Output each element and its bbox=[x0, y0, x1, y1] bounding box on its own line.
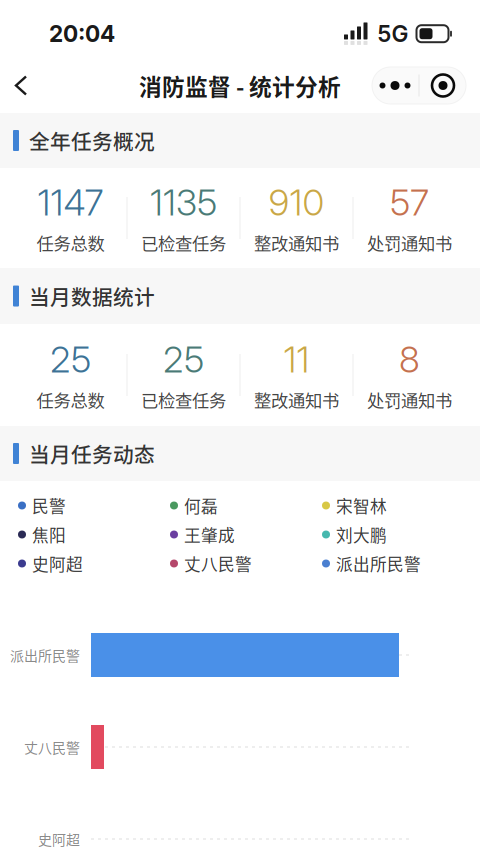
staticText: 宋智林 bbox=[336, 493, 387, 517]
staticText: 史阿超 bbox=[32, 551, 83, 575]
staticText: 整改通知书 bbox=[254, 230, 339, 255]
staticText: 当月任务动态 bbox=[29, 438, 155, 468]
staticText: 910 bbox=[268, 181, 324, 224]
staticText: 民警 bbox=[32, 493, 66, 517]
staticText: 任务总数 bbox=[36, 230, 104, 255]
staticText: 焦阳 bbox=[32, 522, 66, 546]
staticText: 1135 bbox=[150, 181, 217, 224]
staticText: 派出所民警 bbox=[10, 645, 80, 665]
staticText: 何磊 bbox=[184, 493, 218, 517]
staticText: 57 bbox=[390, 181, 429, 224]
staticText: 已检查任务 bbox=[141, 230, 226, 255]
staticText: 25 bbox=[163, 338, 204, 381]
button[interactable]: Back bbox=[0, 63, 44, 107]
staticText: 派出所民警 bbox=[336, 551, 421, 575]
staticText: 1147 bbox=[37, 181, 103, 224]
staticText: 当月数据统计 bbox=[29, 281, 155, 311]
staticText: 11 bbox=[283, 338, 309, 381]
staticText: 处罚通知书 bbox=[367, 230, 452, 255]
staticText: 已检查任务 bbox=[141, 387, 226, 412]
staticText: 25 bbox=[50, 338, 91, 381]
staticText: 丈八民警 bbox=[184, 551, 252, 575]
button[interactable]: Close bbox=[419, 67, 466, 104]
staticText: 处罚通知书 bbox=[367, 387, 452, 412]
staticText: 丈八民警 bbox=[24, 737, 80, 757]
staticText: 史阿超 bbox=[38, 829, 80, 849]
staticText: 消防监督 - 统计分析 bbox=[139, 69, 341, 102]
staticText: 王肇成 bbox=[184, 522, 235, 546]
staticText: 全年任务概况 bbox=[29, 125, 155, 155]
button[interactable]: More bbox=[371, 67, 418, 104]
staticText: 整改通知书 bbox=[254, 387, 339, 412]
staticText: 8 bbox=[399, 338, 420, 381]
staticText: 5G bbox=[377, 20, 408, 47]
staticText: 20:04 bbox=[49, 20, 115, 47]
staticText: 刘大鹏 bbox=[336, 522, 387, 546]
staticText: 任务总数 bbox=[36, 387, 104, 412]
